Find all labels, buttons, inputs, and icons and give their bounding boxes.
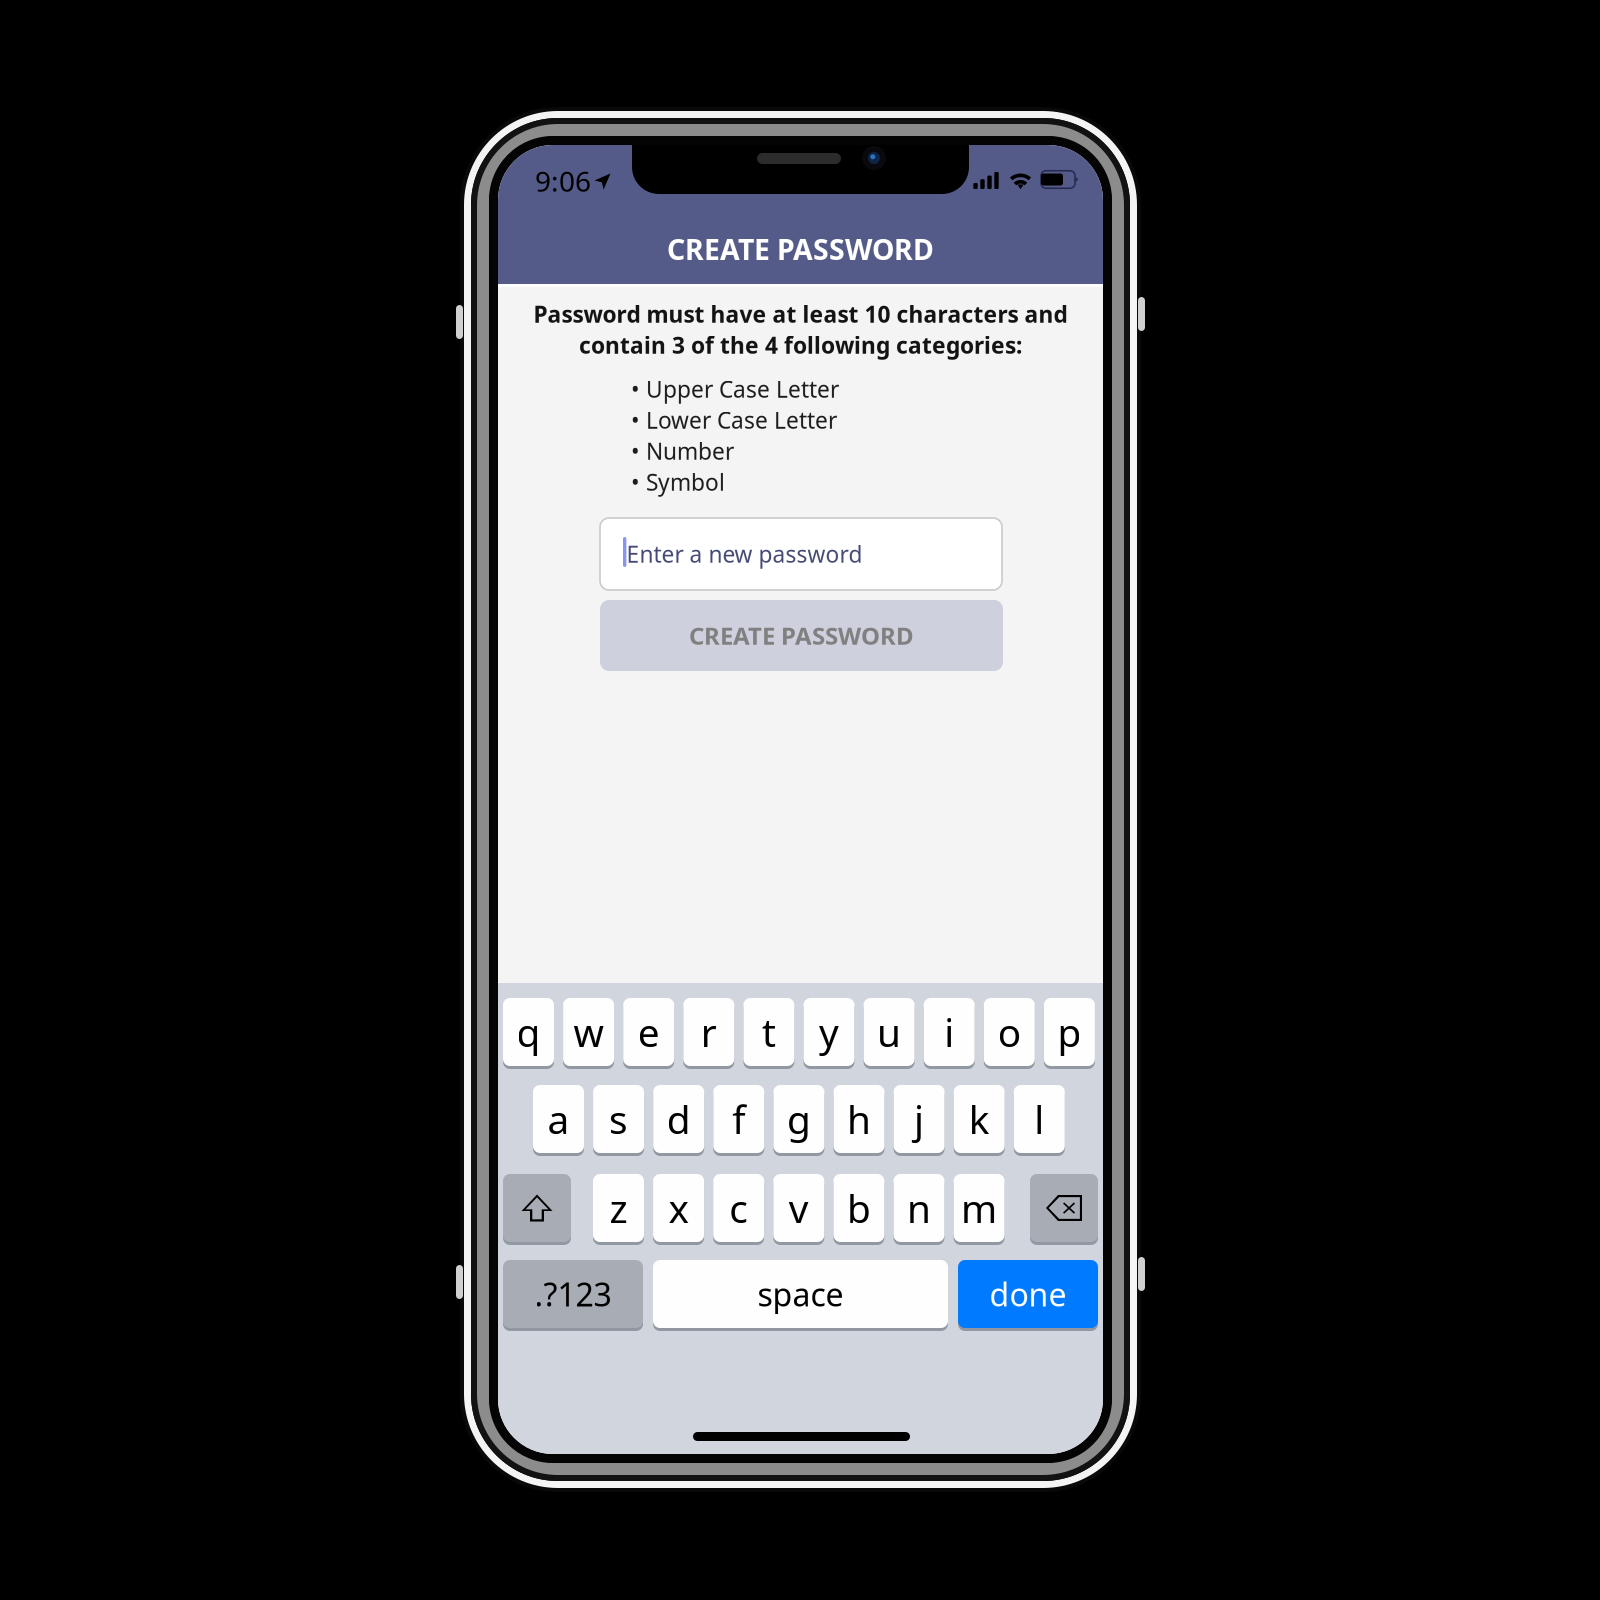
staticText: g — [787, 1093, 811, 1145]
staticText: c — [729, 1182, 748, 1234]
staticText: • Symbol — [631, 467, 725, 497]
button[interactable]: e — [623, 996, 674, 1068]
button[interactable]: y — [803, 996, 854, 1068]
button[interactable]: r — [683, 996, 734, 1068]
staticText: Enter a new password — [626, 539, 862, 569]
staticText: l — [1034, 1093, 1044, 1145]
button[interactable]: s — [593, 1083, 644, 1155]
staticText: CREATE PASSWORD — [667, 230, 934, 268]
button[interactable]: CREATE PASSWORD — [498, 231, 1103, 267]
button[interactable]: w — [563, 996, 614, 1068]
staticText: e — [638, 1006, 660, 1058]
staticText: n — [907, 1182, 931, 1234]
button[interactable]: x — [653, 1172, 704, 1244]
staticText: z — [609, 1182, 627, 1234]
staticText: w — [574, 1006, 604, 1058]
button[interactable]: z — [593, 1172, 644, 1244]
staticText: h — [847, 1093, 871, 1145]
button[interactable]: done — [958, 1258, 1098, 1330]
staticText: r — [701, 1006, 717, 1058]
staticText: f — [732, 1093, 745, 1145]
button[interactable]: .?123 — [503, 1258, 643, 1330]
button[interactable]: t — [743, 996, 794, 1068]
button[interactable]: v — [773, 1172, 824, 1244]
staticText: .?123 — [534, 1273, 611, 1315]
button[interactable]: Enter a new password — [600, 518, 1002, 590]
staticText: u — [877, 1006, 901, 1058]
staticText: 9:06 — [535, 162, 591, 200]
staticText: d — [667, 1093, 691, 1145]
button[interactable]: m — [954, 1172, 1005, 1244]
staticText: i — [944, 1006, 954, 1058]
button[interactable]: a — [533, 1083, 584, 1155]
button[interactable]: p — [1044, 996, 1095, 1068]
button[interactable]: i — [924, 996, 975, 1068]
staticText: o — [998, 1006, 1021, 1058]
staticText: • Number — [631, 436, 734, 466]
button[interactable]: j — [894, 1083, 945, 1155]
staticText: done — [989, 1273, 1066, 1315]
button[interactable]: k — [954, 1083, 1005, 1155]
staticText: Password must have at least 10 character… — [533, 299, 1067, 329]
staticText: y — [819, 1006, 839, 1058]
staticText: p — [1057, 1006, 1081, 1058]
staticText: contain 3 of the 4 following categories: — [579, 330, 1022, 360]
staticText: b — [847, 1182, 871, 1234]
staticText: • Lower Case Letter — [631, 405, 837, 435]
button[interactable]: space — [653, 1258, 948, 1330]
button[interactable]: c — [713, 1172, 764, 1244]
button[interactable]: h — [833, 1083, 884, 1155]
button[interactable]: o — [984, 996, 1035, 1068]
staticText: q — [516, 1006, 540, 1058]
staticText: space — [757, 1273, 843, 1315]
staticText: a — [547, 1093, 569, 1145]
staticText: x — [669, 1182, 689, 1234]
button[interactable]: q — [503, 996, 554, 1068]
button[interactable]: n — [893, 1172, 944, 1244]
staticText: m — [961, 1182, 997, 1234]
button[interactable]: u — [864, 996, 915, 1068]
staticText: t — [762, 1006, 776, 1058]
button[interactable]: Shift — [503, 1172, 571, 1244]
staticText: j — [914, 1093, 924, 1145]
staticText: • Upper Case Letter — [631, 374, 839, 404]
button[interactable]: f — [713, 1083, 764, 1155]
button[interactable]: l — [1014, 1083, 1065, 1155]
staticText: s — [609, 1093, 628, 1145]
button[interactable]: b — [833, 1172, 884, 1244]
staticText: CREATE PASSWORD — [689, 620, 914, 651]
button[interactable]: Delete — [1030, 1172, 1098, 1244]
button[interactable]: CREATE PASSWORD — [600, 600, 1003, 671]
button[interactable]: g — [773, 1083, 824, 1155]
staticText: v — [789, 1182, 809, 1234]
staticText: k — [969, 1093, 990, 1145]
button[interactable]: d — [653, 1083, 704, 1155]
